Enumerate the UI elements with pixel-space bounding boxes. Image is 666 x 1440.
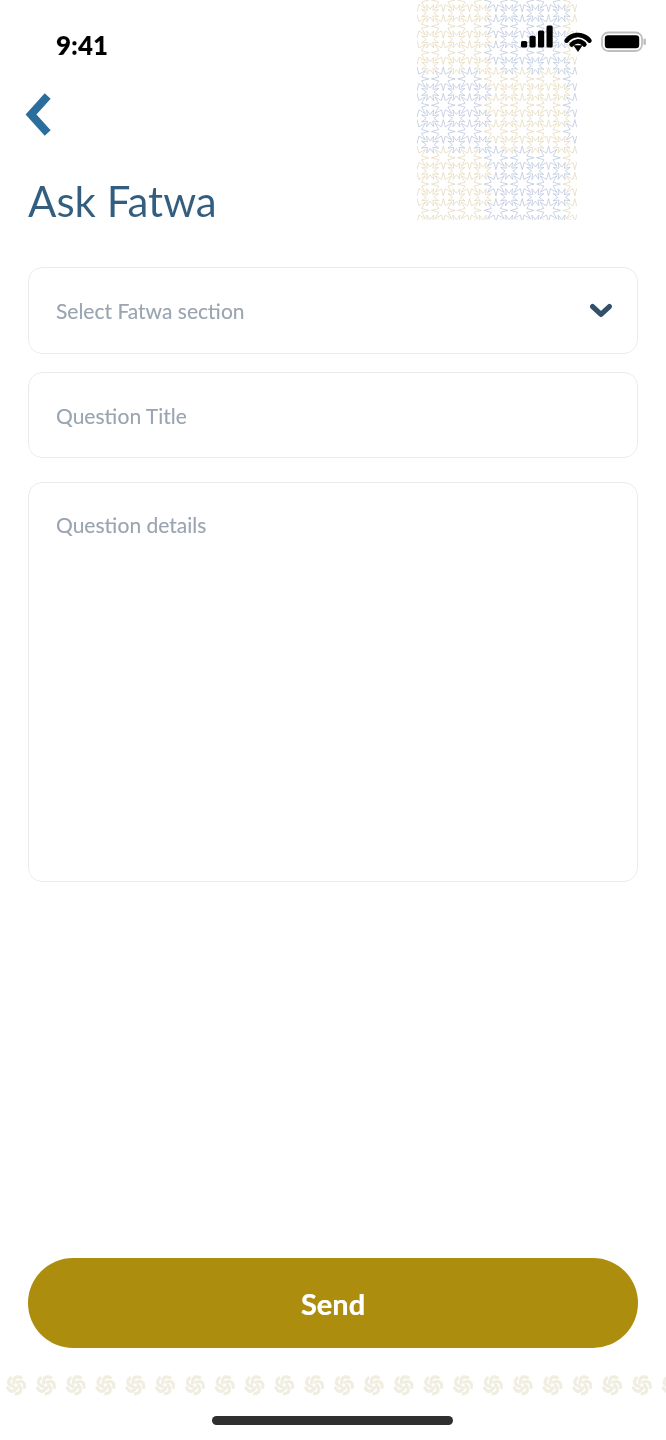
- staticText: 9:41: [56, 29, 109, 60]
- button[interactable]: Select Fatwa section: [28, 267, 638, 354]
- button[interactable]: Question details: [28, 482, 638, 882]
- staticText: Question Title: [56, 403, 187, 428]
- staticText: Question details: [56, 512, 207, 537]
- button[interactable]: Back: [11, 87, 65, 141]
- button[interactable]: Send: [28, 1258, 638, 1348]
- button[interactable]: Question Title: [28, 372, 638, 458]
- staticText: Select Fatwa section: [56, 298, 245, 323]
- staticText: Send: [301, 1286, 366, 1321]
- staticText: Ask Fatwa: [28, 176, 217, 226]
